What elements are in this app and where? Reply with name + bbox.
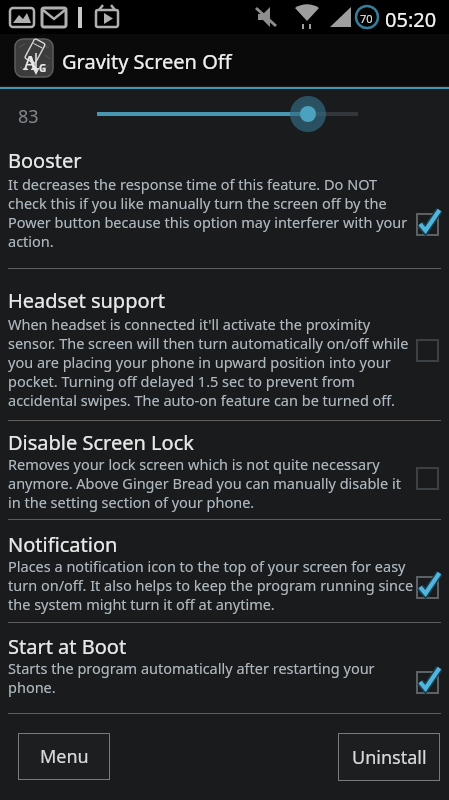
staticText: 05:20 <box>385 6 437 33</box>
button[interactable]: Menu <box>18 733 110 780</box>
staticText: Menu <box>40 744 89 769</box>
staticText: Booster <box>8 147 82 174</box>
staticText: 70 <box>360 11 373 26</box>
button[interactable]: Uninstall <box>338 733 440 781</box>
staticText: Disable Screen Lock <box>8 429 194 456</box>
staticText: Gravity Screen Off <box>62 48 232 75</box>
staticText: Removes your lock screen which is not qu… <box>8 454 402 512</box>
staticText: Notification <box>8 531 118 558</box>
staticText: Start at Boot <box>8 633 127 660</box>
staticText: Places a notification icon to the top of… <box>8 556 414 614</box>
button[interactable] <box>412 332 444 364</box>
button[interactable] <box>412 664 444 696</box>
staticText: G <box>39 61 47 75</box>
staticText: It decreases the response time of this f… <box>8 174 408 251</box>
button[interactable] <box>412 569 444 601</box>
staticText: Starts the program automatically after r… <box>8 658 375 697</box>
button[interactable] <box>412 206 444 238</box>
button[interactable] <box>412 460 444 492</box>
staticText: 83 <box>18 104 39 129</box>
staticText: When headset is connected it'll activate… <box>8 314 409 410</box>
staticText: Uninstall <box>352 745 427 770</box>
staticText: A <box>23 50 38 76</box>
staticText: Headset support <box>8 287 166 314</box>
button[interactable]: 83 <box>0 89 449 141</box>
